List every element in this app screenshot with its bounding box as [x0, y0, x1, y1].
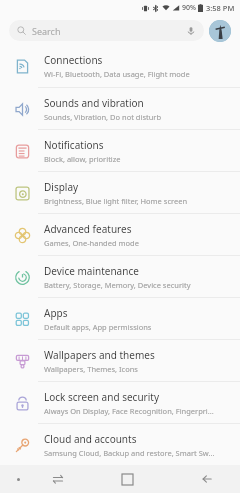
button[interactable]: Apps — [0, 298, 240, 339]
staticText: Apps — [44, 306, 68, 320]
staticText: Battery, Storage, Memory, Device securit… — [44, 280, 191, 290]
staticText: Search — [32, 25, 61, 37]
button[interactable]: Back — [174, 465, 240, 493]
button[interactable]: Home — [80, 465, 174, 493]
staticText: Device maintenance — [44, 264, 139, 278]
staticText: Advanced features — [44, 222, 132, 236]
staticText: Lock screen and security — [44, 390, 159, 404]
button[interactable]: Keyboard indicator — [0, 465, 36, 493]
staticText: Always On Display, Face Recognition, Fin… — [44, 406, 214, 416]
staticText: Display — [44, 180, 79, 194]
staticText: Sounds, Vibration, Do not disturb — [44, 112, 162, 122]
button[interactable]: Lock screen and security — [0, 382, 240, 423]
staticText: Brightness, Blue light filter, Home scre… — [44, 196, 188, 206]
button[interactable]: Connections — [0, 45, 240, 87]
button[interactable]: Cloud and accounts — [0, 424, 240, 465]
staticText: Block, allow, prioritize — [44, 154, 121, 164]
staticText: Wallpapers and themes — [44, 348, 155, 362]
button[interactable]: Wallpapers and themes — [0, 340, 240, 381]
staticText: Default apps, App permissions — [44, 322, 152, 332]
other: Voice search — [186, 26, 196, 36]
staticText: 3:58 PM — [206, 3, 235, 13]
button[interactable]: Notifications — [0, 130, 240, 171]
staticText: Wi-Fi, Bluetooth, Data usage, Flight mod… — [44, 69, 190, 79]
button[interactable]: Search — [9, 20, 204, 41]
button[interactable]: Advanced features — [0, 214, 240, 255]
staticText: Notifications — [44, 138, 104, 152]
staticText: Wallpapers, Themes, Icons — [44, 364, 138, 374]
button[interactable]: Display — [0, 172, 240, 213]
staticText: Connections — [44, 53, 103, 67]
button[interactable]: Device maintenance — [0, 256, 240, 297]
staticText: Samsung Cloud, Backup and restore, Smart… — [44, 448, 215, 458]
staticText: Sounds and vibration — [44, 96, 144, 110]
button[interactable]: Sounds and vibration — [0, 88, 240, 129]
staticText: Cloud and accounts — [44, 432, 137, 446]
staticText: Games, One-handed mode — [44, 238, 139, 248]
staticText: 90% — [182, 3, 196, 13]
button[interactable]: Switch input — [36, 465, 80, 493]
button[interactable]: Account — [209, 20, 231, 42]
